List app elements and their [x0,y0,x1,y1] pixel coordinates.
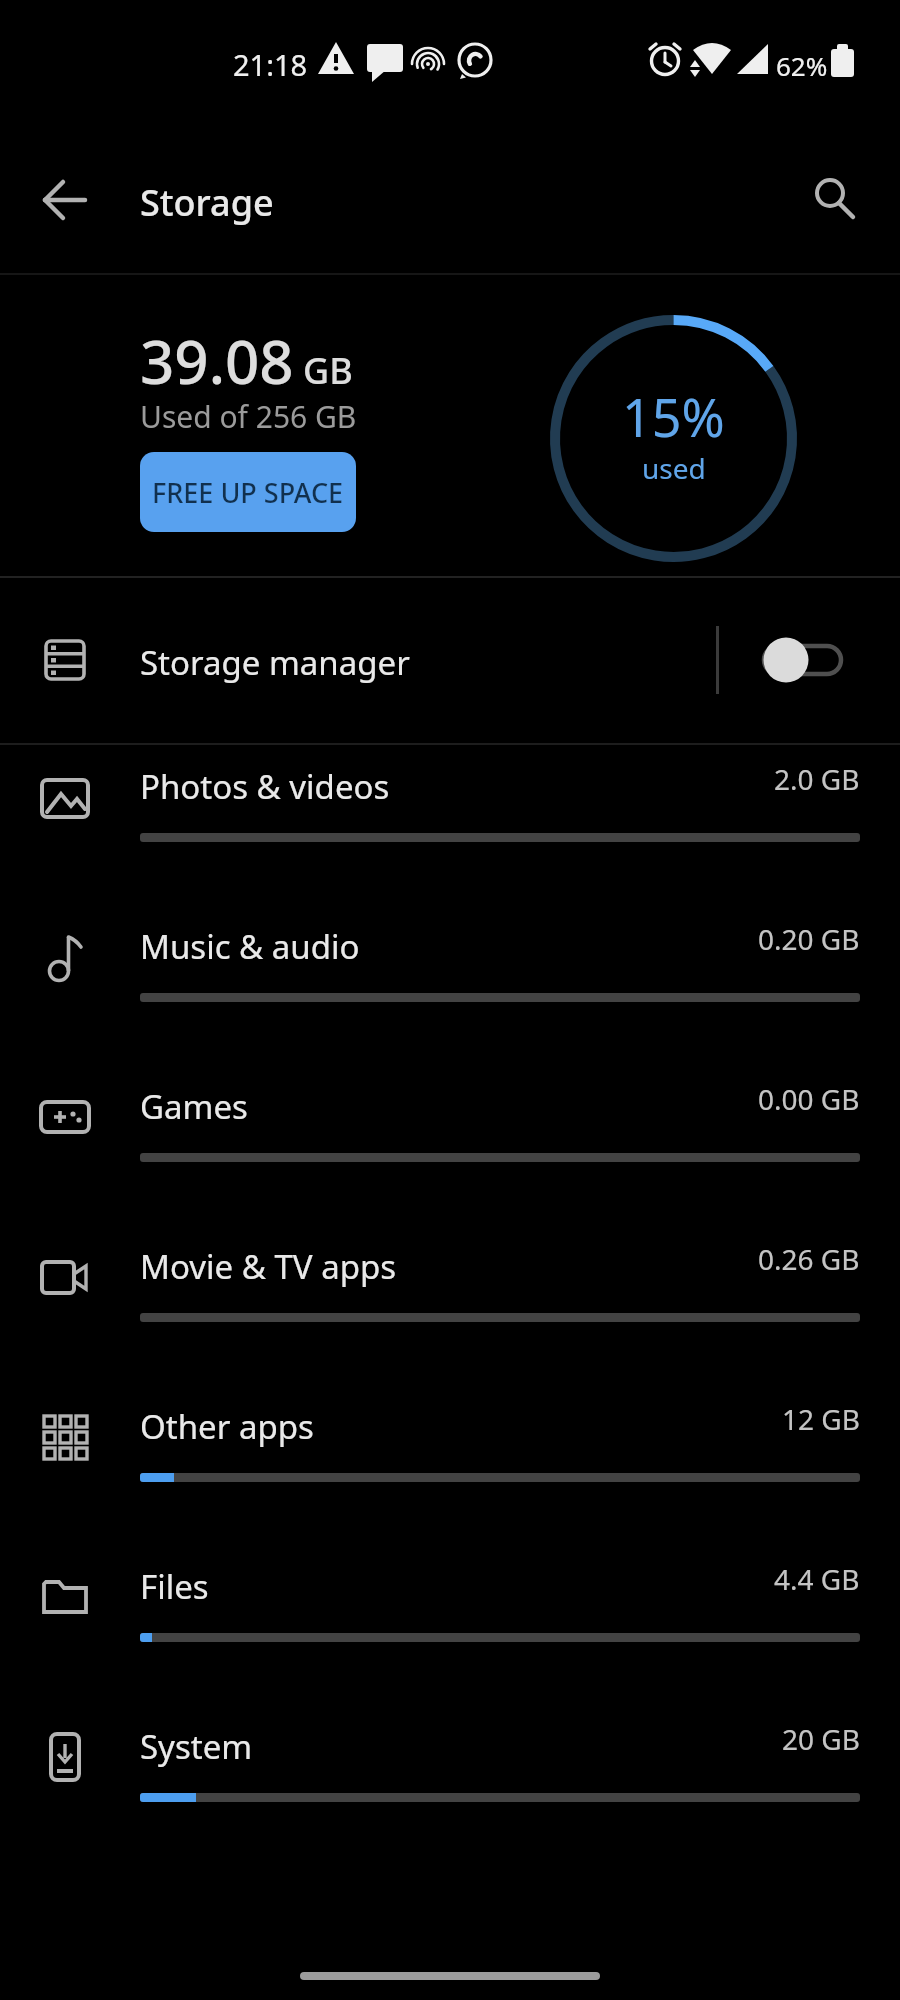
button[interactable]: Other apps [0,1384,900,1544]
staticText: 0.20 GB [758,920,860,958]
button[interactable]: Files [0,1544,900,1704]
staticText: 39.08 GB [140,320,353,402]
staticText: Games [140,1084,248,1129]
staticText: 20 GB [782,1720,860,1758]
staticText: Files [140,1564,209,1609]
staticText: FREE UP SPACE [152,474,344,511]
button[interactable]: Storage manager [0,578,900,743]
button[interactable]: Movie & TV apps [0,1224,900,1384]
staticText: 21:18 [233,45,308,84]
staticText: 62% [776,48,828,83]
staticText: Storage manager [140,640,410,685]
button[interactable]: System [0,1704,900,1864]
button[interactable] [25,160,105,240]
staticText: Storage [140,178,274,227]
staticText: 0.26 GB [758,1240,860,1278]
button[interactable]: Games [0,1064,900,1224]
button[interactable]: FREE UP SPACE [140,452,356,532]
staticText: System [140,1724,253,1769]
staticText: 15% [622,381,725,441]
staticText: 4.4 GB [774,1560,860,1598]
staticText: Used of 256 GB [140,396,357,437]
staticText: Photos & videos [140,764,390,809]
staticText: Movie & TV apps [140,1244,397,1289]
staticText: Other apps [140,1404,314,1449]
staticText: Music & audio [140,924,360,969]
staticText: 12 GB [782,1400,860,1438]
button[interactable]: Photos & videos [0,744,900,904]
staticText: 0.00 GB [758,1080,860,1118]
button[interactable] [795,160,875,240]
staticText: used [642,449,706,483]
button[interactable]: Music & audio [0,904,900,1064]
staticText: 2.0 GB [774,760,860,798]
